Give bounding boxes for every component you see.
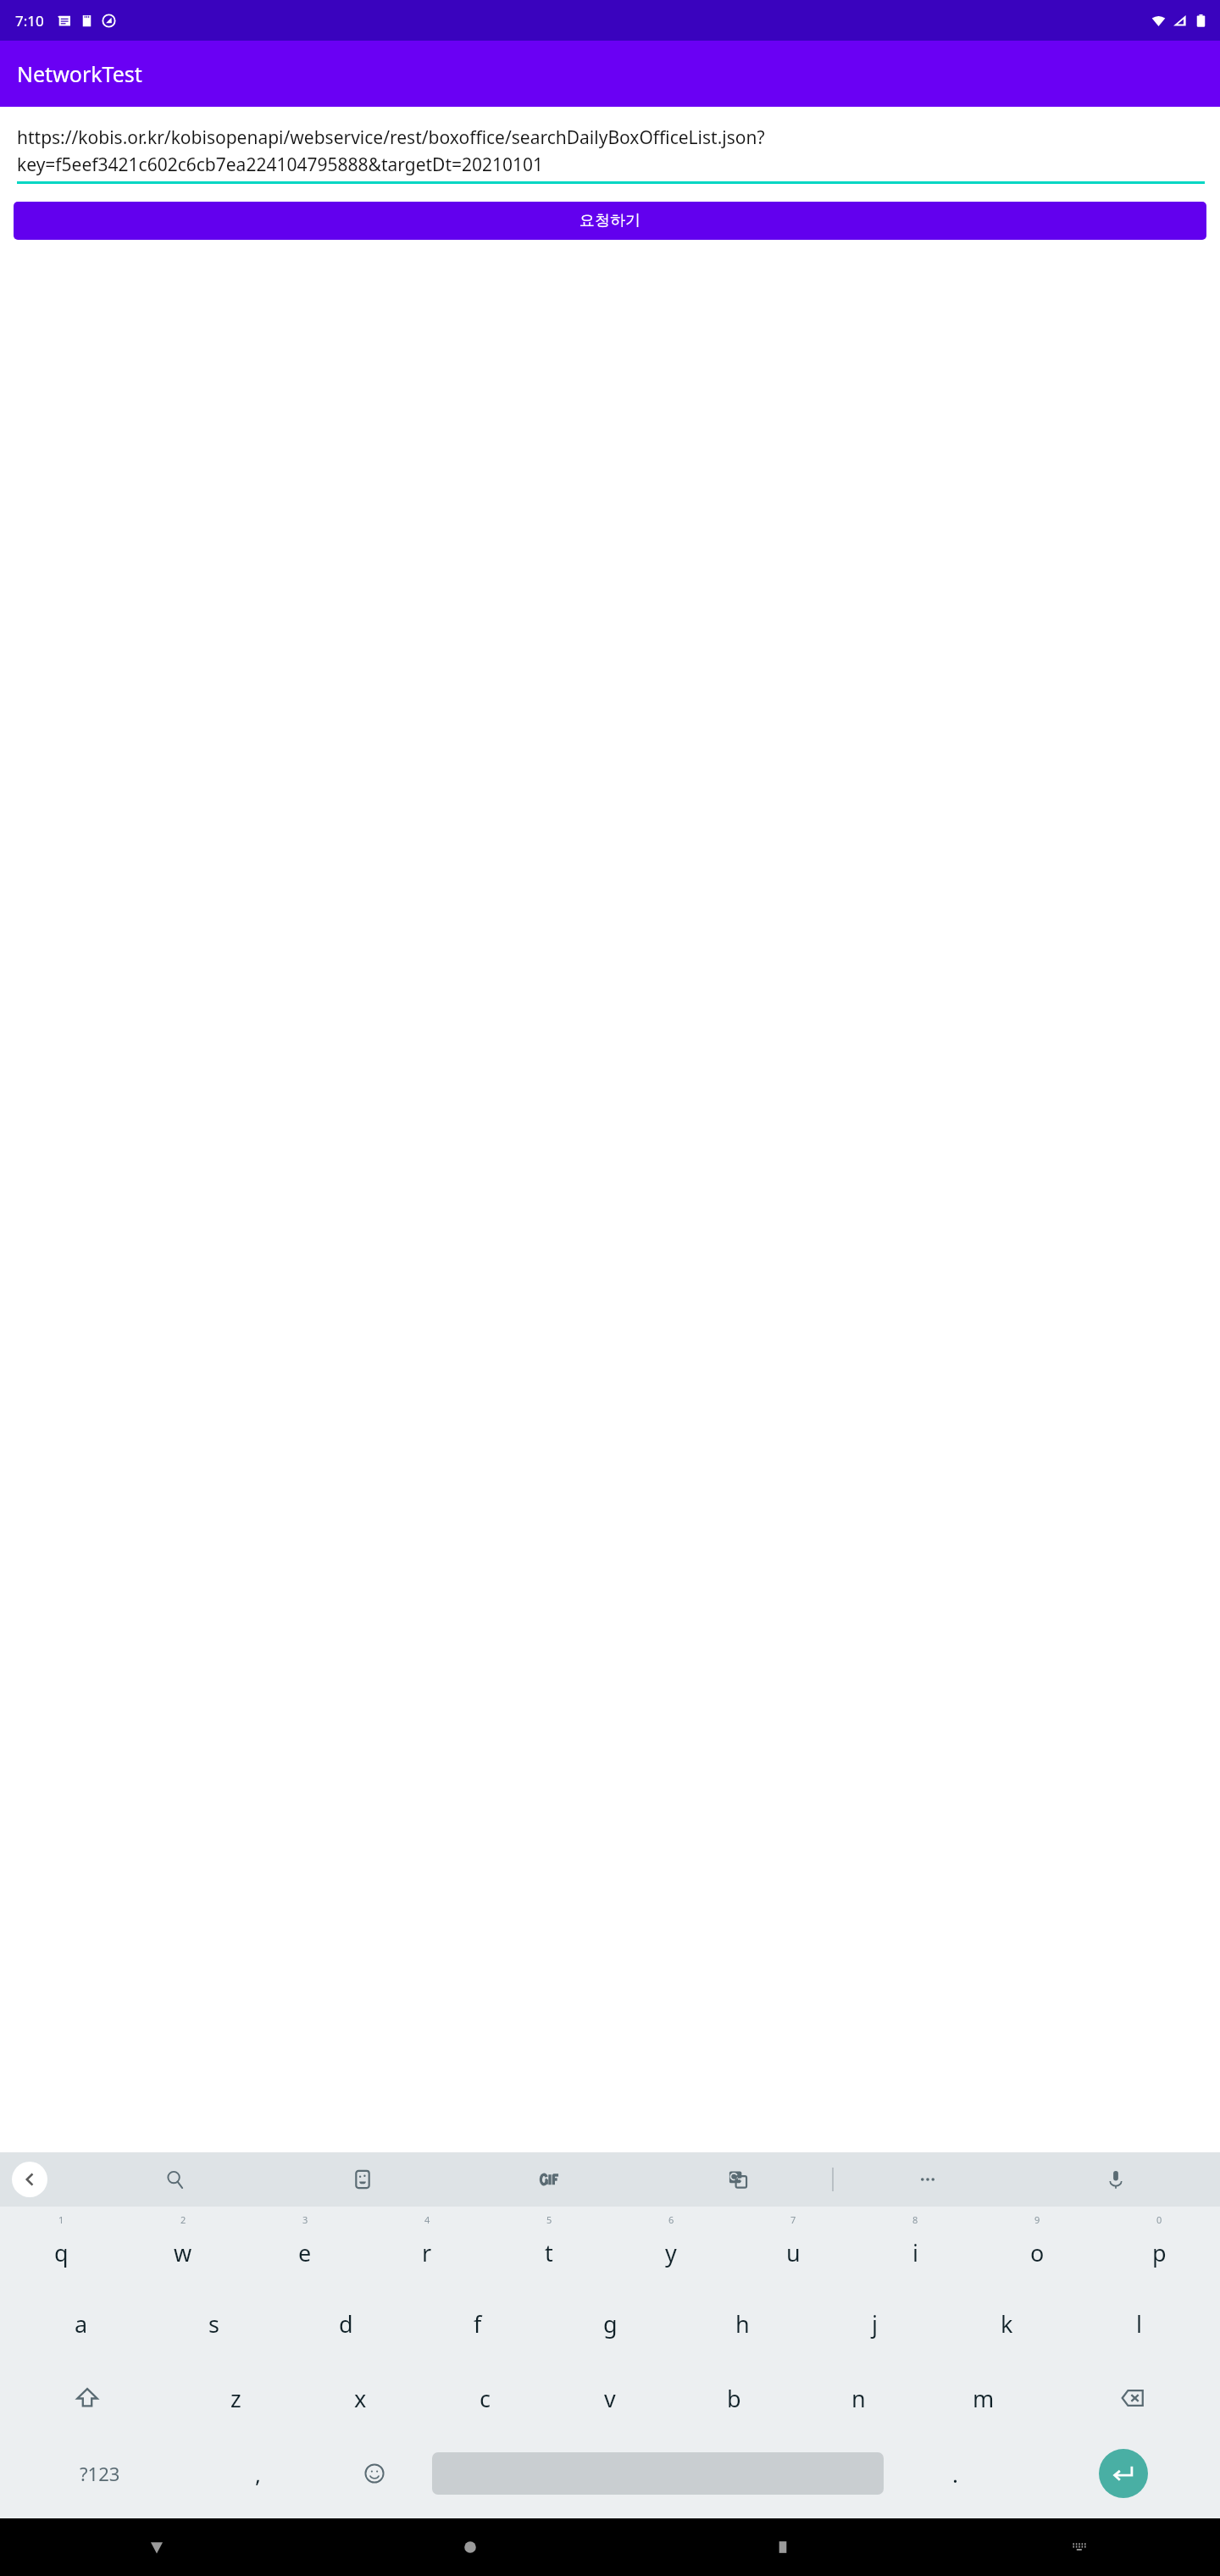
button[interactable]: f [412,2286,544,2361]
staticText: a [75,2308,88,2340]
button[interactable]: d [280,2286,412,2361]
button[interactable]: . [884,2435,1026,2512]
button[interactable]: 3 [244,2212,366,2286]
button[interactable]: Stickers [269,2152,456,2207]
staticText: 7:10 [15,11,44,31]
staticText: l [1136,2308,1142,2340]
staticText: c [480,2383,491,2414]
staticText: t [545,2237,553,2268]
staticText: , [255,2459,261,2489]
staticText: k [1001,2308,1013,2340]
button[interactable]: Translate [644,2152,832,2207]
button[interactable]: Voice input [1022,2152,1210,2207]
staticText: ?123 [80,2461,120,2486]
staticText: u [786,2237,801,2268]
staticText: z [230,2383,241,2414]
button[interactable]: 5 [488,2212,610,2286]
staticText: . [952,2459,958,2489]
staticText: 2 [180,2213,186,2226]
button[interactable]: 0 [1098,2212,1220,2286]
button[interactable]: 4 [366,2212,488,2286]
staticText: q [54,2237,69,2268]
button[interactable]: Shift [0,2361,174,2435]
button[interactable]: k [940,2286,1073,2361]
staticText: d [339,2308,353,2340]
button[interactable]: 7 [732,2212,854,2286]
button[interactable]: 6 [610,2212,732,2286]
staticText: 4 [424,2213,430,2226]
staticText: b [727,2383,741,2414]
staticText: m [973,2383,995,2414]
button[interactable]: ?123 [0,2435,200,2512]
staticText: x [354,2383,367,2414]
button[interactable]: z [174,2361,298,2435]
button[interactable]: Search [81,2152,269,2207]
button[interactable]: Enter [1099,2449,1148,2498]
button[interactable]: h [676,2286,808,2361]
staticText: o [1030,2237,1045,2268]
other: Space [432,2452,884,2495]
button[interactable]: Back [0,2518,313,2576]
button[interactable]: 2 [122,2212,244,2286]
button[interactable]: Home [313,2518,626,2576]
staticText: p [1152,2237,1167,2268]
staticText: s [208,2308,219,2340]
button[interactable]: More options [834,2152,1022,2207]
button[interactable]: g [544,2286,676,2361]
button[interactable]: a [15,2286,147,2361]
button[interactable]: Emoji [316,2435,432,2512]
staticText: 9 [1034,2213,1040,2226]
staticText: w [174,2237,192,2268]
button[interactable]: 요청하기 [14,202,1206,240]
staticText: r [422,2237,432,2268]
staticText: 7 [790,2213,796,2226]
button[interactable]: s [147,2286,280,2361]
staticText: 5 [546,2213,552,2226]
button[interactable]: j [808,2286,940,2361]
staticText: j [872,2308,878,2340]
staticText: 6 [668,2213,674,2226]
button[interactable]: Recent apps [626,2518,939,2576]
button[interactable]: GIF [456,2152,644,2207]
button[interactable]: n [796,2361,921,2435]
button[interactable] [432,2452,884,2495]
button[interactable]: Backspace [1045,2361,1220,2435]
button[interactable]: x [298,2361,423,2435]
button[interactable]: https://kobis.or.kr/kobisopenapi/webserv… [15,125,1205,184]
staticText: i [912,2237,918,2268]
button[interactable]: c [423,2361,547,2435]
staticText: 요청하기 [579,211,640,230]
staticText: e [298,2237,312,2268]
button[interactable]: v [547,2361,672,2435]
staticText: y [665,2237,677,2268]
button[interactable]: 1 [0,2212,122,2286]
staticText: h [735,2308,750,2340]
button[interactable]: Back [12,2162,47,2197]
button[interactable]: l [1073,2286,1205,2361]
button[interactable]: m [921,2361,1045,2435]
staticText: v [604,2383,616,2414]
staticText: n [851,2383,866,2414]
staticText: 8 [912,2213,918,2226]
button[interactable]: b [672,2361,796,2435]
staticText: 0 [1156,2213,1162,2226]
staticText: NetworkTest [17,59,142,88]
button[interactable]: Change keyboard [939,2518,1220,2576]
button[interactable]: 9 [976,2212,1098,2286]
staticText: 3 [302,2213,308,2226]
staticText: https://kobis.or.kr/kobisopenapi/webserv… [17,125,1205,176]
button[interactable]: , [200,2435,316,2512]
button[interactable]: 8 [854,2212,976,2286]
staticText: 1 [58,2213,64,2226]
staticText: f [474,2308,482,2340]
staticText: g [603,2308,618,2340]
